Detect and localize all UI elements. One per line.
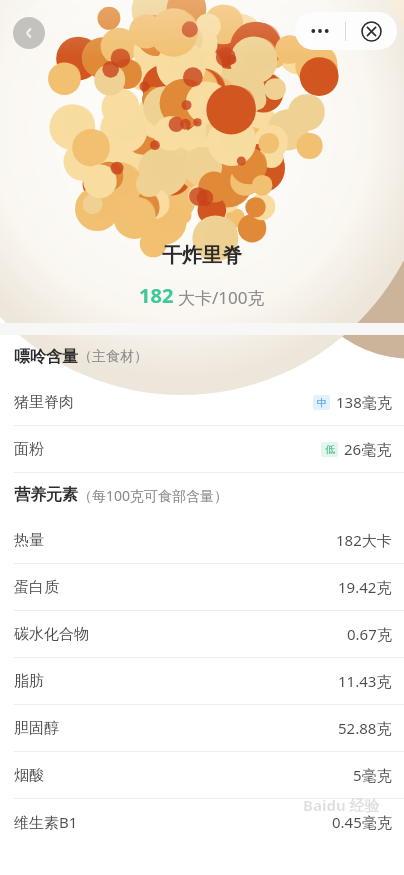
staticText: 蛋白质 xyxy=(14,578,59,597)
staticText: 脂肪 xyxy=(14,672,44,691)
button[interactable]: 烟酸 xyxy=(0,752,404,798)
button[interactable]: More options xyxy=(295,12,345,50)
button[interactable]: 维生素B1 xyxy=(0,799,404,845)
button[interactable]: 热量 xyxy=(0,517,404,563)
staticText: （每100克可食部含量） xyxy=(78,486,229,505)
staticText: 猪里脊肉 xyxy=(14,393,74,412)
button[interactable]: Back xyxy=(13,17,45,49)
button[interactable]: 脂肪 xyxy=(0,658,404,704)
staticText: （主食材） xyxy=(78,348,148,366)
staticText: 维生素B1 xyxy=(14,812,78,832)
staticText: 182 xyxy=(139,282,174,309)
staticText: 营养元素 xyxy=(14,485,78,505)
staticText: Baidu 经验 xyxy=(303,795,380,815)
staticText: 中 xyxy=(317,396,327,409)
staticText: 干炸里脊 xyxy=(162,243,242,268)
staticText: 低 xyxy=(325,443,335,456)
staticText: 面粉 xyxy=(14,440,44,459)
button[interactable]: 胆固醇 xyxy=(0,705,404,751)
staticText: 138毫克 xyxy=(336,392,392,412)
staticText: 烟酸 xyxy=(14,766,44,785)
staticText: 52.88克 xyxy=(338,718,392,738)
button[interactable]: 蛋白质 xyxy=(0,564,404,610)
staticText: 胆固醇 xyxy=(14,719,59,738)
button[interactable]: 碳水化合物 xyxy=(0,611,404,657)
staticText: 19.42克 xyxy=(338,577,392,597)
staticText: 5毫克 xyxy=(353,765,392,785)
staticText: 大卡/100克 xyxy=(178,286,265,309)
button[interactable]: 面粉 xyxy=(0,426,404,472)
button[interactable]: 猪里脊肉 xyxy=(0,379,404,425)
staticText: 182大卡 xyxy=(336,530,392,550)
staticText: 0.45毫克 xyxy=(332,812,392,832)
button[interactable]: Close xyxy=(346,12,397,50)
staticText: 碳水化合物 xyxy=(14,625,89,644)
staticText: 热量 xyxy=(14,531,44,550)
staticText: 0.67克 xyxy=(347,624,392,644)
staticText: 11.43克 xyxy=(338,671,392,691)
staticText: 26毫克 xyxy=(344,439,392,459)
staticText: 嘌呤含量 xyxy=(14,347,78,367)
